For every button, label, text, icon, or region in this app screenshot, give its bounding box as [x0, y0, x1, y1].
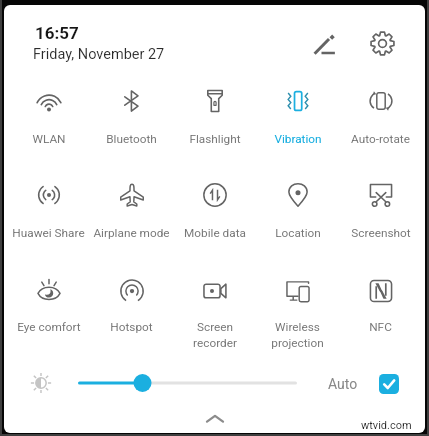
button[interactable]: Screen recorder: [173, 269, 256, 354]
staticText: NFC: [369, 320, 392, 334]
button[interactable]: Airplane mode: [90, 173, 173, 260]
button[interactable]: Expand: [204, 409, 226, 427]
button[interactable]: Vibration: [256, 79, 339, 166]
staticText: Airplane mode: [93, 226, 170, 240]
button[interactable]: Bluetooth: [90, 79, 173, 166]
staticText: Auto: [328, 376, 358, 392]
button[interactable]: Brightness slider: [74, 371, 296, 395]
staticText: Vibration: [274, 132, 322, 146]
button[interactable]: Settings: [368, 29, 397, 58]
staticText: wtvid.com: [361, 419, 412, 432]
staticText: Location: [275, 226, 321, 240]
button[interactable]: Location: [256, 173, 339, 260]
button[interactable]: Eye comfort: [7, 269, 90, 354]
button[interactable]: Hotspot: [90, 269, 173, 354]
staticText: Screenshot: [351, 226, 411, 240]
staticText: Huawei Share: [12, 226, 85, 240]
button[interactable]: NFC: [339, 269, 422, 354]
staticText: Wireless projection: [271, 320, 324, 350]
staticText: Flashlight: [189, 132, 241, 146]
staticText: Auto-rotate: [351, 132, 410, 146]
button[interactable]: Auto-rotate: [339, 79, 422, 166]
button[interactable]: Wireless projection: [256, 269, 339, 354]
staticText: WLAN: [32, 132, 66, 146]
staticText: Bluetooth: [106, 132, 157, 146]
button[interactable]: Brightness: [30, 372, 52, 394]
button[interactable]: Auto: [328, 369, 425, 399]
staticText: Eye comfort: [17, 320, 81, 334]
button[interactable]: Edit quick settings: [312, 32, 338, 58]
button[interactable]: WLAN: [7, 79, 90, 166]
button[interactable]: Mobile data: [173, 173, 256, 260]
staticText: Screen recorder: [193, 320, 237, 350]
staticText: 16:57: [35, 23, 79, 43]
staticText: Mobile data: [184, 226, 246, 240]
button[interactable]: Screenshot: [339, 173, 422, 260]
button[interactable]: Huawei Share: [7, 173, 90, 260]
button[interactable]: Flashlight: [173, 79, 256, 166]
staticText: Hotspot: [110, 320, 153, 334]
staticText: Friday, November 27: [33, 46, 165, 63]
